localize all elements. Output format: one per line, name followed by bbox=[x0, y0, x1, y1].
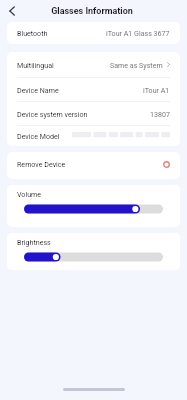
button[interactable]: Bluetooth bbox=[7, 22, 180, 44]
staticText: 13807 bbox=[150, 110, 170, 118]
button[interactable]: Brightness bbox=[24, 252, 163, 262]
button[interactable]: Back bbox=[4, 3, 20, 19]
staticText: Glasses Information bbox=[51, 6, 133, 17]
staticText: iTour A1 Glass 3677 bbox=[106, 29, 170, 37]
staticText: Multilingual bbox=[17, 61, 54, 69]
button[interactable]: Remove Device bbox=[7, 152, 180, 175]
button[interactable]: Device Model bbox=[7, 126, 180, 146]
button[interactable]: Device Name bbox=[7, 78, 180, 101]
button[interactable]: Multilingual bbox=[7, 52, 180, 77]
other: Remove device bbox=[162, 160, 170, 168]
staticText: Device Model bbox=[17, 132, 60, 140]
staticText: iTour A1 bbox=[143, 86, 170, 94]
button[interactable]: Device system version bbox=[7, 102, 180, 125]
staticText: Bluetooth bbox=[17, 29, 48, 37]
staticText: Device Name bbox=[17, 86, 59, 94]
staticText: Same as System bbox=[110, 61, 163, 69]
staticText: Brightness bbox=[17, 238, 51, 246]
staticText: Volume bbox=[17, 190, 42, 198]
button[interactable]: Volume bbox=[24, 204, 163, 214]
staticText: Remove Device bbox=[17, 160, 66, 168]
staticText: Device system version bbox=[17, 110, 88, 118]
